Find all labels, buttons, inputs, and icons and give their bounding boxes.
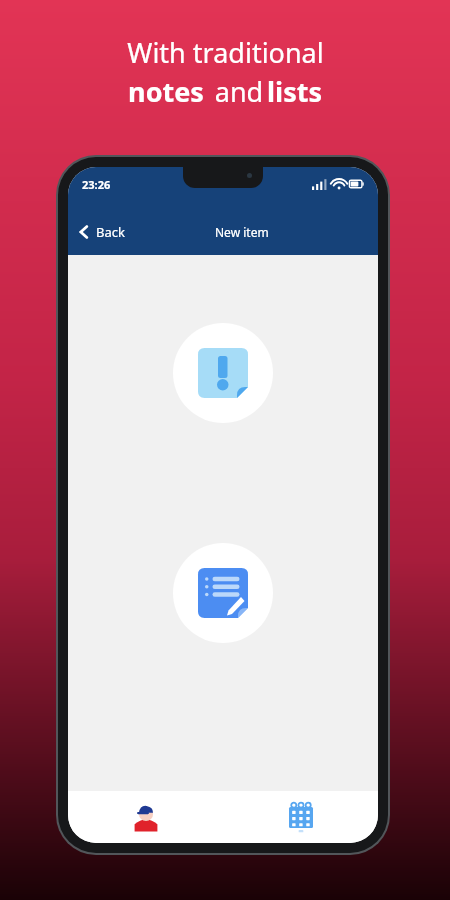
button[interactable]: Calendar [223,791,378,843]
staticText: 23:26 [82,177,111,192]
button[interactable]: New note [173,323,273,423]
button[interactable]: Back [68,212,135,252]
staticText: and [204,73,267,110]
button[interactable]: New list [173,543,273,643]
staticText: notes [128,73,204,110]
staticText: Back [96,223,125,241]
staticText: lists [267,73,322,110]
staticText: With traditional [127,34,324,71]
button[interactable]: Profile [68,791,223,843]
staticText: New item [215,224,269,240]
